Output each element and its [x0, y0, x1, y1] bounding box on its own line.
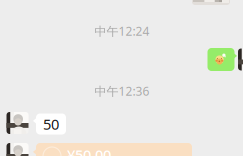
button[interactable]: Sticker — [207, 48, 234, 71]
button[interactable]: 50 — [36, 113, 66, 134]
button[interactable]: Transfer 50 yuan — [36, 143, 192, 156]
staticText: 中午12:36 — [94, 83, 149, 99]
button[interactable]: Photo message — [192, 0, 230, 5]
staticText: ¥50.00 — [67, 145, 111, 156]
staticText: 50 — [43, 114, 59, 134]
staticText: 中午12:24 — [94, 23, 149, 39]
